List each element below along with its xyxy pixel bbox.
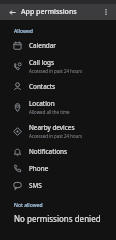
staticText: App permissions — [21, 7, 77, 17]
staticText: Phone — [29, 164, 49, 173]
staticText: No permissions denied — [14, 213, 101, 224]
staticText: Location — [29, 99, 55, 108]
staticText: Contacts — [29, 82, 56, 91]
button[interactable]: Location — [0, 95, 116, 119]
staticText: Call logs — [29, 58, 55, 67]
button[interactable]: SMS — [0, 177, 116, 194]
button[interactable]: Phone — [0, 160, 116, 177]
staticText: Calendar — [29, 41, 56, 50]
staticText: Allowed all the time — [29, 109, 70, 115]
staticText: Accessed in past 24 hours — [29, 68, 83, 74]
staticText: Notifications — [29, 147, 68, 156]
button[interactable]: Calendar — [0, 37, 116, 54]
staticText: SMS — [29, 181, 42, 190]
staticText: Allowed — [14, 28, 33, 35]
button[interactable]: Call logs — [0, 54, 116, 78]
button[interactable]: Notifications — [0, 143, 116, 160]
button[interactable]: More options — [100, 6, 112, 18]
button[interactable]: Contacts — [0, 78, 116, 95]
button[interactable]: Back — [6, 6, 18, 18]
button[interactable]: Nearby devices — [0, 119, 116, 143]
staticText: Nearby devices — [29, 123, 75, 132]
staticText: Accessed in past 24 hours — [29, 133, 83, 139]
staticText: Not allowed — [14, 202, 43, 209]
